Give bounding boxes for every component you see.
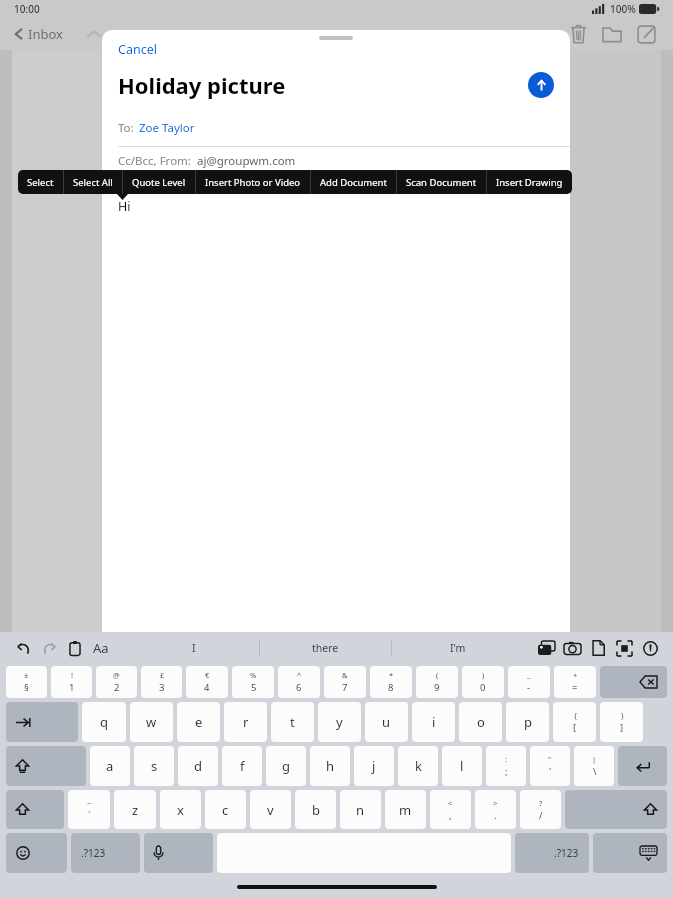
button[interactable]: Undo (10, 635, 36, 661)
button[interactable]: ( (416, 666, 458, 698)
button[interactable]: % (232, 666, 274, 698)
button[interactable]: Quote Level (123, 170, 195, 194)
button[interactable]: ) (462, 666, 504, 698)
button[interactable]: ? (520, 790, 561, 829)
button[interactable]: e (177, 702, 220, 742)
button[interactable]: @ (96, 666, 137, 698)
staticText: To: (118, 120, 134, 136)
staticText: % (250, 670, 257, 680)
button[interactable]: } (600, 702, 643, 742)
button[interactable]: g (266, 746, 306, 786)
button[interactable]: Add Document (311, 170, 396, 194)
button[interactable]: € (186, 666, 228, 698)
button[interactable]: z (114, 790, 156, 829)
button[interactable]: { (553, 702, 596, 742)
button[interactable]: Insert document (585, 635, 611, 661)
button[interactable]: ! (51, 666, 92, 698)
button[interactable]: : (486, 746, 526, 786)
staticText: > (493, 798, 498, 808)
button[interactable]: + (554, 666, 596, 698)
button[interactable]: Scan document (611, 635, 637, 661)
button[interactable]: f (222, 746, 262, 786)
staticText: Inbox (28, 25, 63, 43)
button[interactable]: Paste (62, 635, 88, 661)
button[interactable]: > (475, 790, 516, 829)
button[interactable]: Insert Photo or Video (196, 170, 310, 194)
button[interactable]: Redo (36, 635, 62, 661)
button[interactable]: & (324, 666, 366, 698)
button[interactable]: t (271, 702, 314, 742)
button[interactable]: d (178, 746, 218, 786)
button[interactable]: _ (508, 666, 550, 698)
button[interactable]: | (574, 746, 614, 786)
staticText: - (527, 681, 531, 694)
button[interactable]: Shift (6, 790, 64, 829)
button[interactable]: .?123 (71, 833, 140, 873)
button[interactable]: Cancel (102, 39, 173, 60)
button[interactable]: To: (102, 116, 570, 140)
button[interactable]: Scan Document (397, 170, 486, 194)
button[interactable]: I'm (392, 632, 523, 664)
button[interactable]: k (398, 746, 438, 786)
button[interactable]: h (310, 746, 350, 786)
button[interactable]: .?123 (515, 833, 589, 873)
button[interactable]: Tab (6, 702, 78, 742)
button[interactable]: m (385, 790, 426, 829)
staticText: Scan Document (406, 176, 477, 189)
button[interactable]: Dictation (144, 833, 213, 873)
button[interactable]: Inbox (12, 25, 65, 43)
button[interactable]: there (260, 632, 391, 664)
button[interactable]: w (130, 702, 173, 742)
button[interactable]: x (160, 790, 201, 829)
button[interactable]: Emoji (6, 833, 67, 873)
button[interactable]: Next message (107, 21, 133, 47)
button[interactable]: * (370, 666, 412, 698)
button[interactable]: l (442, 746, 482, 786)
button[interactable]: Cc/Bcc, From: (102, 147, 570, 175)
button[interactable]: ~ (68, 790, 110, 829)
button[interactable]: r (224, 702, 267, 742)
button[interactable]: Backspace (600, 666, 667, 698)
button[interactable]: £ (141, 666, 182, 698)
button[interactable]: ^ (278, 666, 320, 698)
button[interactable]: I (128, 632, 259, 664)
button[interactable]: u (365, 702, 408, 742)
button[interactable]: < (430, 790, 471, 829)
button[interactable]: o (459, 702, 502, 742)
button[interactable]: Camera (559, 635, 585, 661)
button[interactable]: Markup (637, 635, 663, 661)
button[interactable]: j (354, 746, 394, 786)
button[interactable]: ± (6, 666, 47, 698)
button[interactable]: p (506, 702, 549, 742)
button[interactable]: Shift (565, 790, 667, 829)
staticText: Holiday picture (118, 70, 286, 100)
button[interactable]: Previous message (81, 21, 107, 47)
button[interactable]: Delete (561, 18, 595, 50)
button[interactable]: Send (528, 72, 554, 98)
staticText: Insert Photo or Video (205, 176, 301, 189)
button[interactable]: Select (18, 170, 63, 194)
button[interactable]: Insert Drawing (487, 170, 572, 194)
button[interactable]: Hide keyboard (593, 833, 667, 873)
button[interactable]: s (134, 746, 174, 786)
button[interactable]: c (205, 790, 246, 829)
button[interactable]: Insert photo (533, 635, 559, 661)
button[interactable]: " (530, 746, 570, 786)
button[interactable]: q (82, 702, 126, 742)
button[interactable]: i (412, 702, 455, 742)
button[interactable]: n (340, 790, 381, 829)
button[interactable]: Return (618, 746, 667, 786)
staticText: r (243, 713, 249, 731)
button[interactable]: a (90, 746, 130, 786)
staticText: j (372, 757, 376, 775)
button[interactable]: y (318, 702, 361, 742)
button[interactable]: b (295, 790, 336, 829)
button[interactable]: Shift (6, 746, 86, 786)
staticText: * (389, 670, 394, 680)
button[interactable]: Move to folder (595, 18, 629, 50)
button[interactable]: Compose (629, 18, 663, 50)
button[interactable]: Text format (88, 635, 114, 661)
button[interactable]: Select All (64, 170, 122, 194)
button[interactable]: v (250, 790, 291, 829)
